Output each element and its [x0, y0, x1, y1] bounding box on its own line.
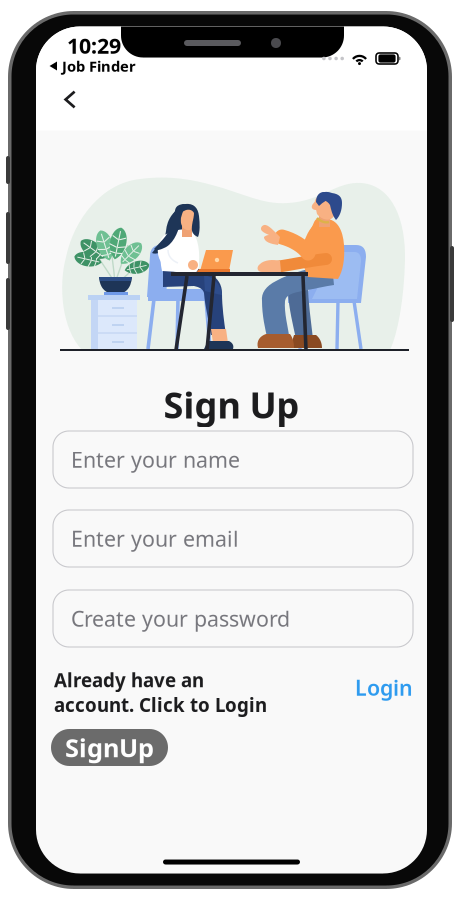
staticText: Login	[355, 673, 413, 702]
button[interactable]: Back	[41, 70, 99, 128]
staticText: Enter your name	[71, 445, 240, 474]
staticText: Enter your email	[71, 524, 239, 553]
button[interactable]: Enter your email	[53, 510, 413, 567]
staticText: SignUp	[65, 731, 154, 764]
button[interactable]: SignUp	[51, 729, 168, 766]
staticText: Sign Up	[163, 381, 299, 428]
staticText: Already have an account. Click to Login	[54, 667, 267, 717]
button[interactable]: Enter your name	[53, 431, 413, 488]
button[interactable]: Login	[336, 675, 413, 699]
staticText: Create your password	[71, 604, 290, 633]
button[interactable]: Create your password	[53, 590, 413, 647]
staticText: 10:29	[67, 31, 121, 60]
staticText: Job Finder	[62, 56, 136, 76]
